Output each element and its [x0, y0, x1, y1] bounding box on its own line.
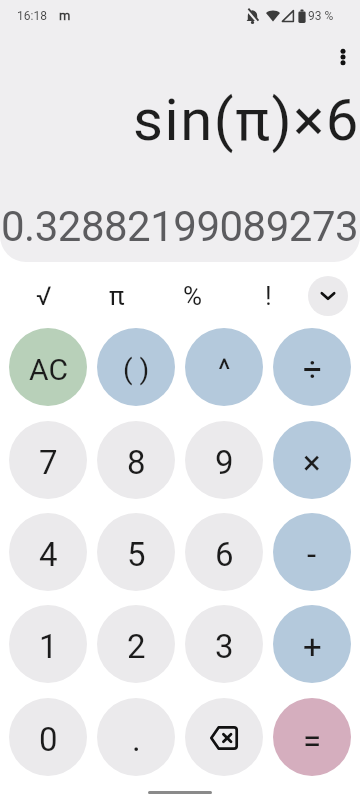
staticText: 1	[39, 627, 58, 666]
staticText: !	[265, 281, 272, 311]
staticText: 93 %	[308, 9, 334, 23]
staticText: %	[183, 281, 203, 311]
button[interactable]: 3	[185, 605, 263, 683]
staticText: 7	[39, 443, 58, 482]
button[interactable]: 9	[185, 421, 263, 499]
button[interactable]: 6	[185, 513, 263, 591]
staticText: +	[303, 627, 322, 666]
button[interactable]: 8	[97, 421, 175, 499]
button[interactable]: ×	[273, 421, 351, 499]
button[interactable]: 7	[9, 421, 87, 499]
button[interactable]: !	[246, 276, 290, 316]
button[interactable]: π	[95, 276, 139, 316]
staticText: 2	[127, 627, 146, 666]
button[interactable]: 0	[9, 698, 87, 776]
button[interactable]: +	[273, 605, 351, 683]
button[interactable]: .	[97, 698, 175, 776]
staticText: ×	[303, 443, 321, 482]
staticText: m	[59, 8, 71, 23]
staticText: 8	[127, 443, 146, 482]
staticText: ÷	[303, 350, 322, 389]
staticText: √	[36, 281, 52, 311]
button[interactable]: %	[171, 276, 215, 316]
button[interactable]: =	[273, 698, 351, 776]
staticText: π	[109, 281, 125, 311]
button[interactable]: AC	[9, 328, 87, 406]
staticText: 9	[215, 443, 234, 482]
staticText: =	[303, 722, 322, 761]
staticText: 5	[127, 535, 146, 574]
button[interactable]: 1	[9, 605, 87, 683]
staticText: sin(π)×6	[0, 86, 360, 154]
button[interactable]: -	[273, 513, 351, 591]
button[interactable]	[308, 276, 348, 316]
button[interactable]: ÷	[273, 328, 351, 406]
staticText: 4	[39, 535, 58, 574]
button[interactable]: 5	[97, 513, 175, 591]
staticText: 16:18	[17, 9, 47, 23]
staticText: -	[307, 535, 317, 574]
staticText: 0	[39, 720, 58, 759]
button[interactable]	[185, 698, 263, 776]
button[interactable]: ( )	[97, 328, 175, 406]
button[interactable]	[328, 42, 357, 71]
staticText: .	[132, 720, 141, 759]
staticText: AC	[29, 352, 68, 387]
button[interactable]: ^	[185, 328, 263, 406]
button[interactable]: 4	[9, 513, 87, 591]
button[interactable]: 2	[97, 605, 175, 683]
staticText: 6	[215, 535, 234, 574]
staticText: ^	[218, 352, 231, 387]
staticText: ( )	[123, 353, 150, 386]
staticText: 3	[215, 627, 234, 666]
button[interactable]: √	[22, 276, 66, 316]
staticText: 0.32882199089273	[1, 202, 359, 251]
